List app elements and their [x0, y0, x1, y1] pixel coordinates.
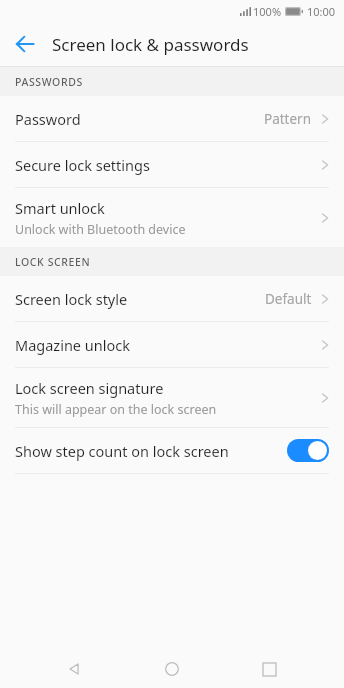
- button[interactable]: Password: [0, 96, 344, 141]
- staticText: Default: [265, 290, 312, 308]
- button[interactable]: Secure lock settings: [0, 142, 344, 187]
- staticText: Smart unlock: [15, 198, 105, 218]
- staticText: Secure lock settings: [15, 155, 150, 175]
- button[interactable]: Back: [53, 650, 97, 688]
- button[interactable]: Show step count on lock screen: [0, 428, 344, 473]
- button[interactable]: Smart unlock: [0, 188, 344, 247]
- staticText: Show step count on lock screen: [15, 441, 287, 461]
- staticText: Pattern: [264, 110, 312, 128]
- staticText: Magazine unlock: [15, 335, 130, 355]
- staticText: PASSWORDS: [15, 75, 83, 89]
- staticText: LOCK SCREEN: [15, 255, 91, 269]
- button[interactable]: Home: [150, 650, 194, 688]
- staticText: 10:00: [307, 4, 336, 19]
- button[interactable]: Recent apps: [247, 650, 291, 688]
- staticText: Screen lock style: [15, 289, 128, 309]
- staticText: Lock screen signature: [15, 378, 164, 398]
- staticText: 100%: [253, 4, 282, 19]
- button[interactable]: Back: [6, 25, 44, 63]
- staticText: This will appear on the lock screen: [15, 401, 217, 418]
- button[interactable]: Magazine unlock: [0, 322, 344, 367]
- button[interactable]: Screen lock style: [0, 276, 344, 321]
- staticText: Password: [15, 109, 81, 129]
- staticText: Screen lock & passwords: [52, 33, 249, 56]
- staticText: Unlock with Bluetooth device: [15, 221, 186, 238]
- button[interactable]: Lock screen signature: [0, 368, 344, 427]
